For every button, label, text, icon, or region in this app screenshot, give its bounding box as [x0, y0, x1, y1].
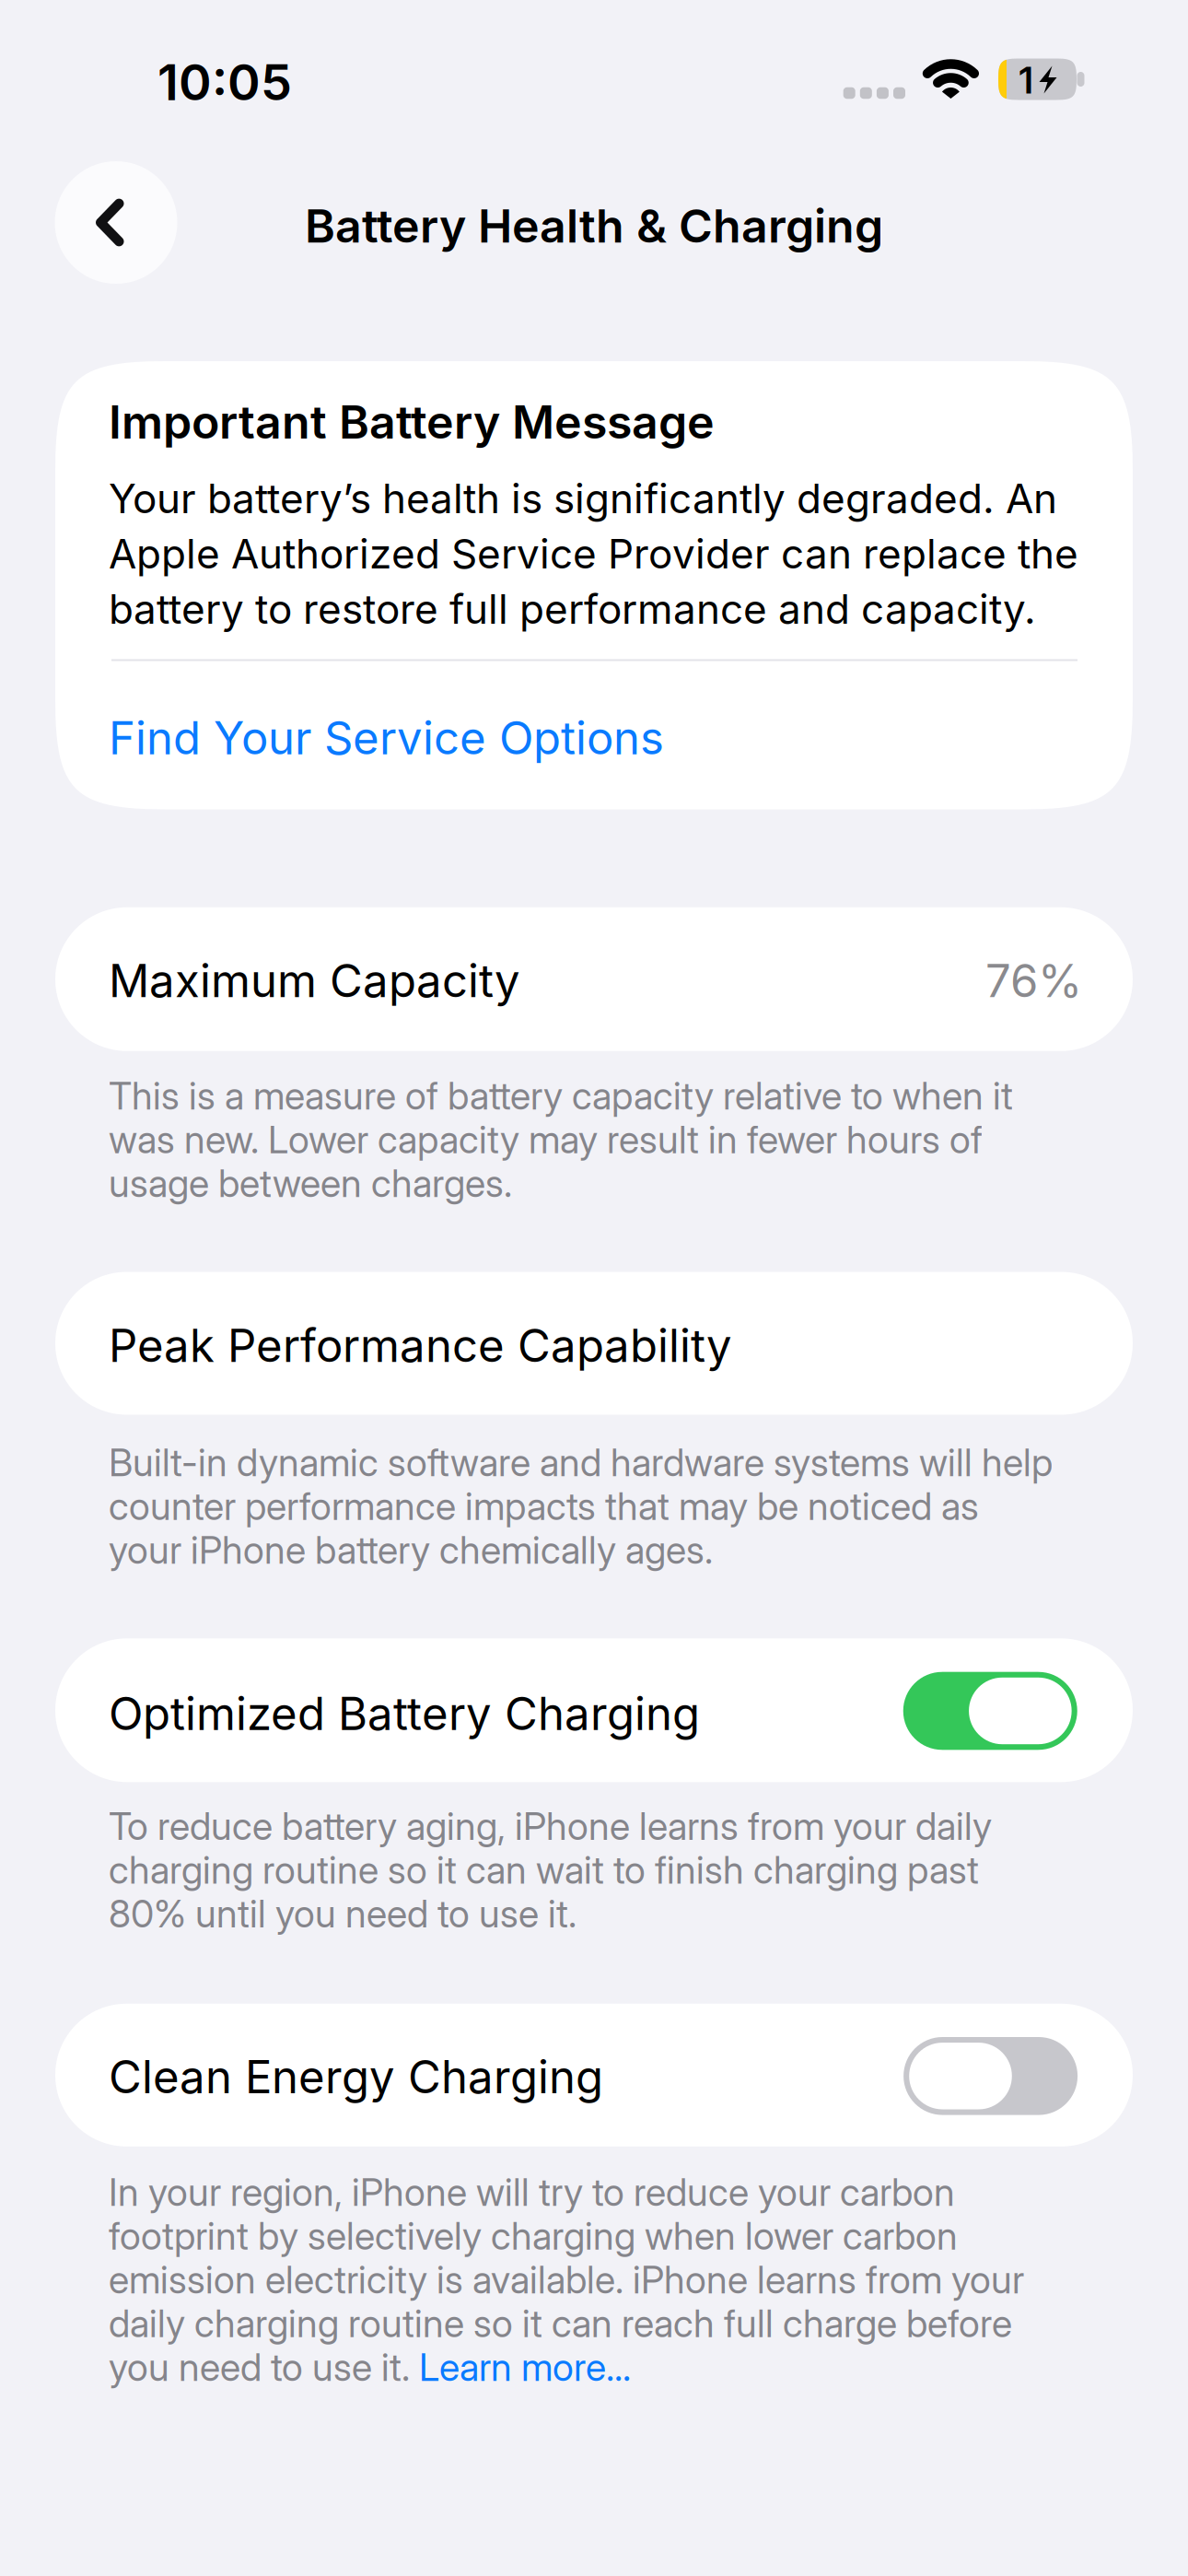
- button[interactable]: Optimized Battery Charging: [903, 1672, 1077, 1750]
- button[interactable]: Find Your Service Options: [109, 711, 1077, 765]
- staticText: you need to use it.: [109, 2344, 419, 2390]
- staticText: Important Battery Message: [109, 394, 715, 450]
- staticText: counter performance impacts that may be …: [109, 1483, 979, 1529]
- staticText: emission electricity is available. iPhon…: [109, 2257, 1024, 2302]
- staticText: daily charging routine so it can reach f…: [109, 2301, 1012, 2346]
- staticText: 80% until you need to use it.: [109, 1891, 577, 1937]
- staticText: Learn more...: [419, 2344, 631, 2390]
- staticText: Battery Health & Charging: [305, 198, 883, 254]
- staticText: To reduce battery aging, iPhone learns f…: [109, 1803, 992, 1849]
- button[interactable]: Clean Energy Charging: [904, 2037, 1078, 2115]
- staticText: Find Your Service Options: [109, 711, 664, 765]
- staticText: usage between charges.: [109, 1160, 512, 1206]
- button[interactable]: Learn more...: [419, 2344, 631, 2390]
- staticText: charging routine so it can wait to finis…: [109, 1847, 979, 1893]
- staticText: footprint by selectively charging when l…: [109, 2213, 958, 2259]
- staticText: In your region, iPhone will try to reduc…: [109, 2169, 955, 2215]
- staticText: Maximum Capacity: [109, 953, 520, 1008]
- staticText: 76%: [985, 953, 1082, 1008]
- button[interactable]: Back: [55, 161, 177, 284]
- staticText: Peak Performance Capability: [109, 1318, 732, 1373]
- staticText: Your battery’s health is significantly d…: [109, 474, 1057, 523]
- staticText: was new. Lower capacity may result in fe…: [109, 1117, 983, 1162]
- staticText: your iPhone battery chemically ages.: [109, 1527, 713, 1573]
- staticText: 10:05: [157, 52, 292, 112]
- staticText: Built-in dynamic software and hardware s…: [109, 1440, 1053, 1485]
- staticText: 1: [1019, 58, 1033, 102]
- staticText: battery to restore full performance and …: [109, 584, 1036, 633]
- staticText: Apple Authorized Service Provider can re…: [109, 529, 1078, 578]
- staticText: Optimized Battery Charging: [109, 1686, 700, 1741]
- staticText: This is a measure of battery capacity re…: [109, 1073, 1013, 1119]
- staticText: Clean Energy Charging: [109, 2050, 603, 2104]
